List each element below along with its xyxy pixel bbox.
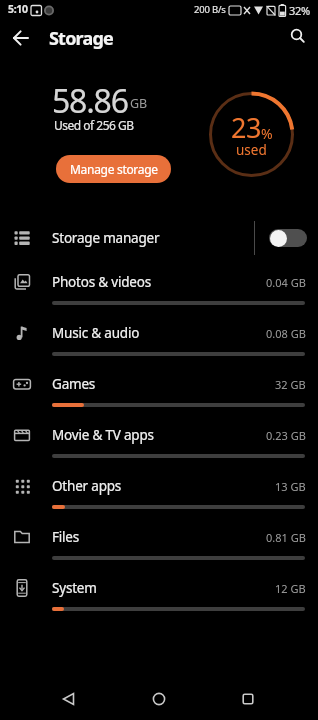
staticText: 23 <box>231 109 261 143</box>
staticText: % <box>261 124 273 143</box>
staticText: Storage manager <box>52 229 160 247</box>
staticText: Other apps <box>52 477 122 495</box>
button[interactable] <box>282 22 314 54</box>
staticText: 32 GB <box>275 377 306 392</box>
staticText: 58.86 <box>52 79 128 117</box>
button[interactable]: Other apps <box>0 465 318 516</box>
button[interactable] <box>48 679 88 719</box>
button[interactable]: Movie & TV apps <box>0 414 318 465</box>
button[interactable]: System <box>0 567 318 618</box>
staticText: 5:10 <box>8 2 28 16</box>
staticText: Files <box>52 528 80 546</box>
button[interactable]: Music & audio <box>0 312 318 363</box>
staticText: System <box>52 579 97 597</box>
staticText: Games <box>52 375 96 393</box>
button[interactable]: Games <box>0 363 318 414</box>
staticText: 0.04 GB <box>266 275 306 290</box>
button[interactable] <box>269 229 307 247</box>
staticText: 32% <box>289 3 310 18</box>
button[interactable]: Files <box>0 516 318 567</box>
button[interactable]: Manage storage <box>56 155 171 183</box>
button[interactable] <box>139 679 179 719</box>
staticText: Photos & videos <box>52 273 151 291</box>
staticText: 13 GB <box>275 479 306 494</box>
staticText: 0.23 GB <box>266 428 306 443</box>
staticText: Used of 256 GB <box>54 117 134 133</box>
staticText: Music & audio <box>52 324 140 342</box>
staticText: Manage storage <box>70 161 158 177</box>
button[interactable] <box>228 679 268 719</box>
staticText: 0.81 GB <box>266 530 306 545</box>
staticText: Movie & TV apps <box>52 426 154 444</box>
button[interactable]: Photos & videos <box>0 261 318 312</box>
staticText: 12 GB <box>275 581 306 596</box>
staticText: 0.08 GB <box>266 326 306 341</box>
staticText: Storage <box>49 26 113 51</box>
staticText: 200 B/s <box>194 3 226 16</box>
button[interactable]: Storage manager <box>0 214 318 261</box>
button[interactable] <box>6 23 36 53</box>
staticText: GB <box>130 95 147 112</box>
staticText: used <box>236 141 267 156</box>
